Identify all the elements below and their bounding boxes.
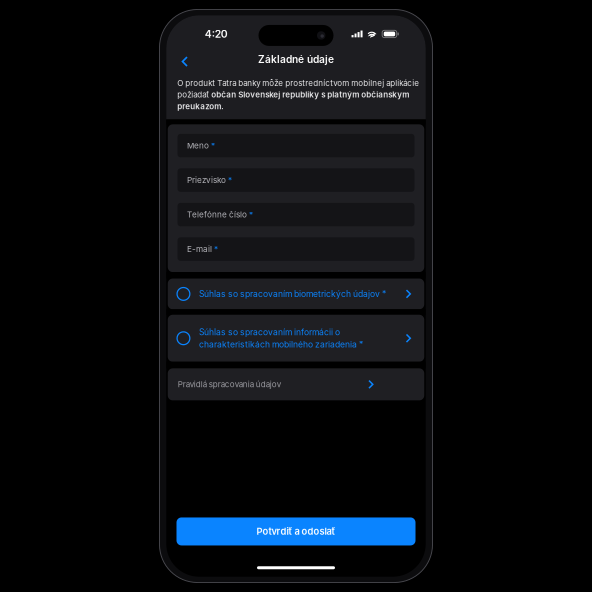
button[interactable]: Telefónne číslo [177,203,414,226]
button[interactable]: Súhlas so spracovaním biometrických údaj… [168,279,424,309]
staticText: Súhlas so spracovaním informácii o chara… [199,327,363,350]
staticText: E-mail [187,244,212,254]
button[interactable]: Potvrdiť a odoslať [176,517,415,545]
staticText: O produkt Tatra banky môže prostredníctv… [177,78,419,111]
staticText: Priezvisko [187,175,226,185]
staticText: * [212,244,218,254]
button[interactable]: Meno [177,134,414,157]
staticText: 4:20 [205,28,228,40]
staticText: Meno [187,141,209,150]
button[interactable]: Súhlas so spracovaním informácii o chara… [168,315,424,362]
button[interactable]: Pravidlá spracovania údajov [168,368,424,400]
staticText: Súhlas so spracovaním biometrických údaj… [199,289,386,299]
staticText: Potvrdiť a odoslať [256,526,335,537]
staticText: * [226,175,232,185]
staticText: Pravidlá spracovania údajov [178,379,281,389]
button[interactable]: Priezvisko [177,168,414,192]
staticText: Základné údaje [258,53,334,65]
button[interactable]: E-mail [177,237,414,261]
button[interactable]: Back [173,47,197,71]
staticText: * [247,210,253,219]
staticText: * [209,141,215,150]
staticText: Telefónne číslo [187,210,247,219]
